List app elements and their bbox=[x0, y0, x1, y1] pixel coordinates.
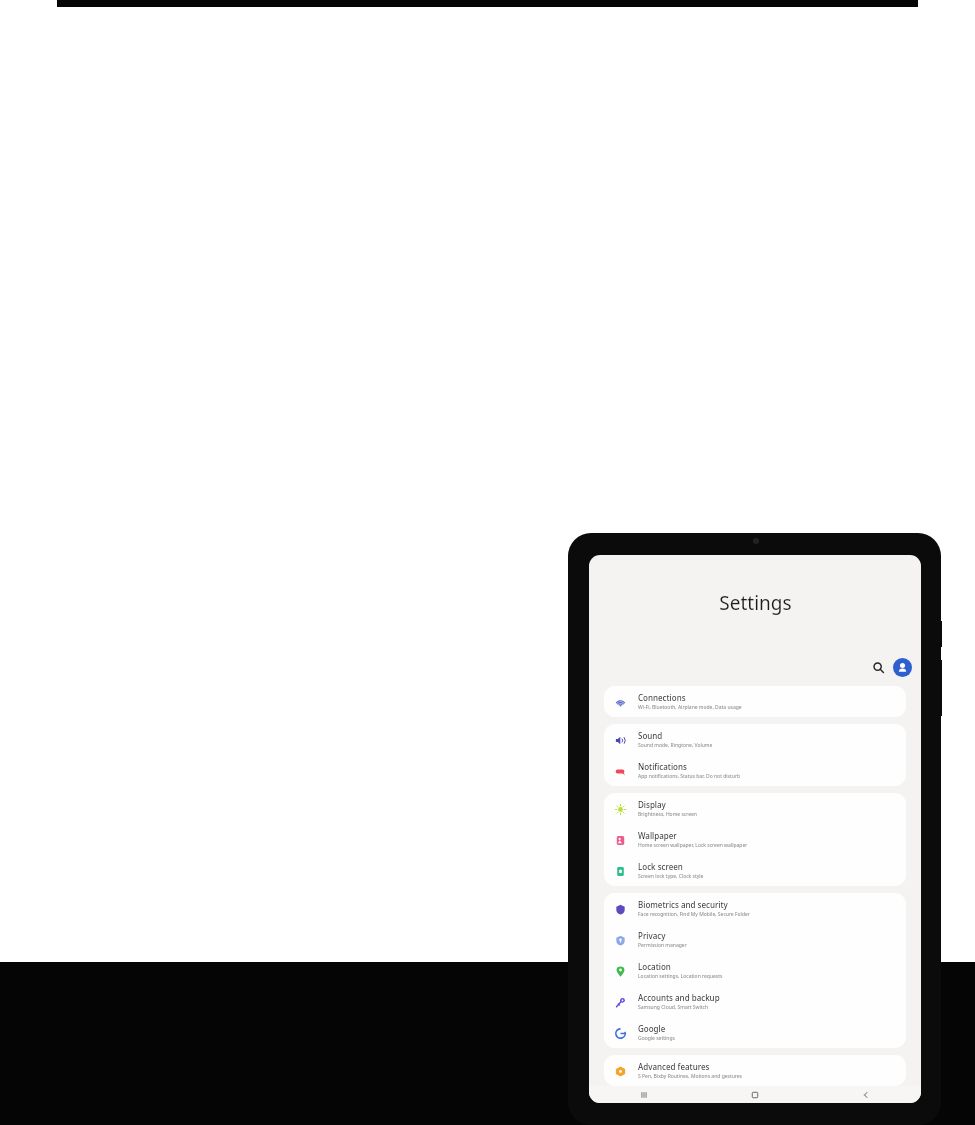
button[interactable]: Back bbox=[810, 1086, 921, 1103]
button[interactable]: Accounts and backup bbox=[604, 986, 906, 1017]
staticText: Location settings, Location requests bbox=[638, 973, 723, 980]
staticText: Google settings bbox=[638, 1035, 675, 1042]
staticText: Notifications bbox=[638, 761, 687, 772]
button[interactable]: Biometrics and security bbox=[604, 893, 906, 924]
button[interactable]: Wallpaper bbox=[604, 824, 906, 855]
staticText: Location bbox=[638, 961, 671, 972]
staticText: Sound mode, Ringtone, Volume bbox=[638, 742, 713, 749]
staticText: Privacy bbox=[638, 930, 666, 941]
button[interactable]: Samsung account bbox=[893, 658, 912, 677]
button[interactable]: Advanced features bbox=[604, 1055, 906, 1086]
staticText: Permission manager bbox=[638, 942, 687, 949]
staticText: Accounts and backup bbox=[638, 992, 720, 1003]
staticText: Lock screen bbox=[638, 861, 683, 872]
button[interactable]: Google bbox=[604, 1017, 906, 1048]
button[interactable]: Home bbox=[699, 1086, 810, 1103]
staticText: Connections bbox=[638, 692, 686, 703]
button[interactable]: Sound bbox=[604, 724, 906, 755]
staticText: Wallpaper bbox=[638, 830, 677, 841]
staticText: S Pen, Bixby Routines, Motions and gestu… bbox=[638, 1073, 742, 1080]
staticText: Brightness, Home screen bbox=[638, 811, 697, 818]
staticText: Face recognition, Find My Mobile, Secure… bbox=[638, 911, 750, 918]
button[interactable]: Display bbox=[604, 793, 906, 824]
staticText: Wi-Fi, Bluetooth, Airplane mode, Data us… bbox=[638, 704, 742, 711]
staticText: Sound bbox=[638, 730, 663, 741]
staticText: Advanced features bbox=[638, 1061, 710, 1072]
button[interactable]: Notifications bbox=[604, 755, 906, 786]
button[interactable]: Search settings bbox=[868, 657, 888, 677]
staticText: Biometrics and security bbox=[638, 899, 728, 910]
button[interactable]: Location bbox=[604, 955, 906, 986]
staticText: Settings bbox=[719, 590, 792, 616]
staticText: Home screen wallpaper, Lock screen wallp… bbox=[638, 842, 748, 849]
button[interactable]: Connections bbox=[604, 686, 906, 717]
button[interactable]: Lock screen bbox=[604, 855, 906, 886]
staticText: Samsung Cloud, Smart Switch bbox=[638, 1004, 709, 1011]
staticText: Screen lock type, Clock style bbox=[638, 873, 704, 880]
button[interactable]: Privacy bbox=[604, 924, 906, 955]
button[interactable]: Recent apps bbox=[589, 1086, 699, 1103]
staticText: Google bbox=[638, 1023, 666, 1034]
staticText: Display bbox=[638, 799, 666, 810]
staticText: App notifications, Status bar, Do not di… bbox=[638, 773, 741, 780]
